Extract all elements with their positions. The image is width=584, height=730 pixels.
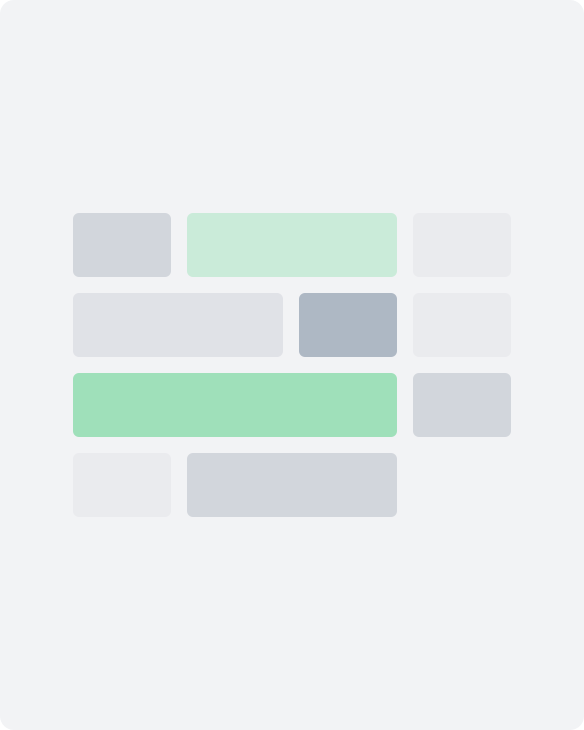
button[interactable]: Tile 5 <box>299 293 397 357</box>
